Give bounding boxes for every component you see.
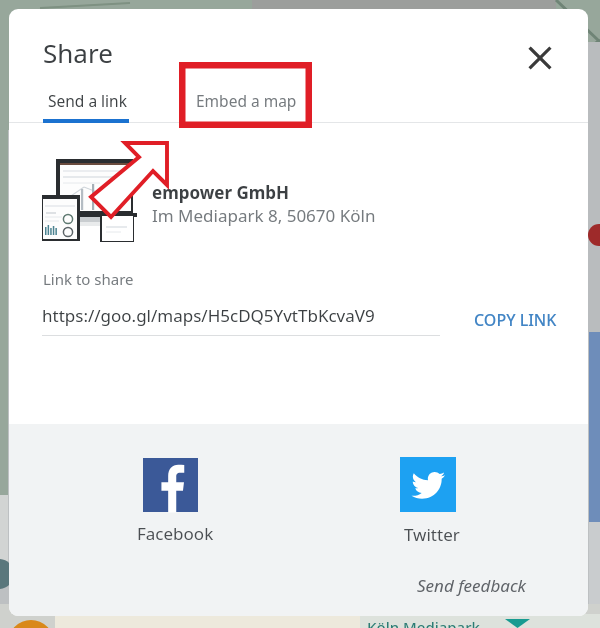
button[interactable]: Close dialog	[520, 38, 560, 78]
staticText: Facebook	[137, 522, 214, 544]
staticText: Send a link	[48, 90, 127, 111]
staticText: https://goo.gl/maps/H5cDQ5YvtTbKcvaV9	[42, 304, 375, 327]
staticText: COPY LINK	[474, 309, 557, 331]
button[interactable]: COPY LINK	[459, 306, 571, 334]
button[interactable]: Send a link	[32, 79, 142, 121]
staticText: Send feedback	[417, 574, 527, 597]
staticText: Im Mediapark 8, 50670 Köln	[152, 204, 376, 227]
staticText: empower GmbH	[152, 181, 290, 204]
staticText: Share	[43, 35, 113, 70]
staticText: Link to share	[43, 269, 134, 289]
button[interactable]: Send feedback	[405, 571, 539, 599]
staticText: Twitter	[404, 523, 460, 545]
staticText: Embed a map	[196, 90, 297, 111]
button[interactable]: Facebook	[119, 449, 231, 549]
button[interactable]: Embed a map	[180, 79, 312, 121]
button[interactable]: Twitter	[376, 449, 488, 549]
staticText: Köln Mediapark	[367, 617, 480, 628]
